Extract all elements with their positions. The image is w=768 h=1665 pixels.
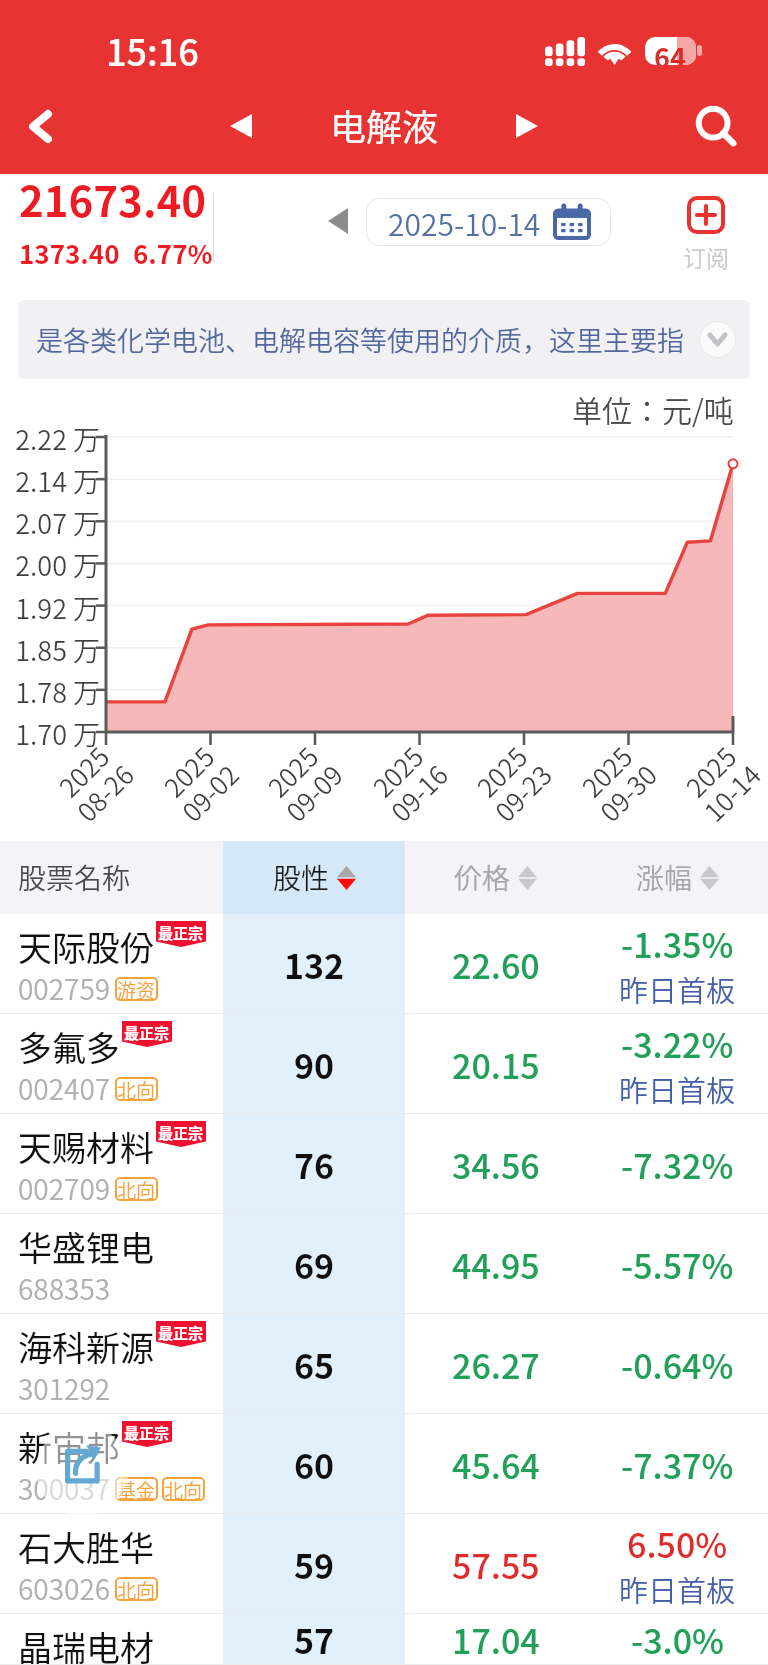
- staticText: 北向: [117, 1076, 156, 1100]
- staticText: -5.57%: [621, 1240, 734, 1289]
- staticText: 300037: [18, 1468, 111, 1509]
- staticText: 新宙邦: [18, 1422, 120, 1471]
- staticText: 游资: [117, 976, 156, 1000]
- staticText: 2025-10-14: [388, 201, 541, 244]
- staticText: 股票名称: [18, 857, 131, 898]
- staticText: 最正宗: [158, 1322, 204, 1344]
- staticText: 64: [654, 37, 686, 65]
- button[interactable]: 石大胜华: [0, 1514, 768, 1614]
- staticText: 2025 09-23: [445, 715, 578, 848]
- button[interactable]: Expand description: [699, 321, 736, 358]
- staticText: 1.85 万: [6, 630, 100, 669]
- button[interactable]: 2025-10-14: [366, 198, 611, 246]
- button[interactable]: 天际股份: [0, 914, 768, 1014]
- button[interactable]: Back: [4, 78, 76, 174]
- staticText: 北向: [117, 1176, 156, 1200]
- staticText: 单位：元/吨: [572, 387, 734, 430]
- button[interactable]: 海科新源: [0, 1314, 768, 1414]
- staticText: 2025 09-02: [132, 715, 265, 848]
- staticText: 002407: [18, 1068, 111, 1109]
- staticText: 26.27: [452, 1340, 540, 1389]
- staticText: 20.15: [452, 1040, 540, 1089]
- staticText: 海科新源: [18, 1322, 154, 1371]
- staticText: 多氟多: [18, 1022, 120, 1071]
- staticText: 石大胜华: [18, 1522, 154, 1571]
- button[interactable]: 股票名称: [0, 841, 223, 914]
- staticText: 价格: [454, 857, 511, 898]
- staticText: -3.0%: [631, 1615, 724, 1664]
- staticText: 晶瑞电材: [18, 1622, 154, 1665]
- button[interactable]: Previous day: [314, 188, 362, 254]
- staticText: 天际股份: [18, 922, 154, 971]
- button[interactable]: 晶瑞电材: [0, 1614, 768, 1665]
- staticText: 22.60: [452, 940, 540, 989]
- staticText: 是各类化学电池、电解电容等使用的介质，这里主要指: [36, 320, 684, 359]
- staticText: 6.77%: [133, 234, 213, 272]
- staticText: 301292: [18, 1368, 111, 1409]
- staticText: -3.22%: [621, 1019, 734, 1068]
- staticText: 59: [294, 1540, 335, 1589]
- staticText: 17.04: [452, 1615, 540, 1664]
- staticText: 最正宗: [158, 922, 204, 944]
- staticText: -7.32%: [621, 1140, 734, 1189]
- staticText: 2.22 万: [6, 419, 100, 458]
- staticText: 昨日首板: [619, 1068, 736, 1110]
- staticText: 天赐材料: [18, 1122, 154, 1171]
- button[interactable]: 价格: [405, 841, 586, 914]
- staticText: 昨日首板: [619, 1568, 736, 1610]
- staticText: 45.64: [452, 1440, 540, 1489]
- staticText: 15:16: [106, 24, 199, 76]
- staticText: 6.50%: [627, 1519, 728, 1568]
- staticText: 34.56: [452, 1140, 540, 1189]
- button[interactable]: 涨幅: [586, 841, 768, 914]
- staticText: 44.95: [452, 1240, 540, 1289]
- staticText: 股性: [273, 857, 330, 898]
- staticText: 1.78 万: [6, 672, 100, 711]
- staticText: 21673.40: [19, 168, 207, 229]
- button[interactable]: 天赐材料: [0, 1114, 768, 1214]
- staticText: -1.35%: [621, 919, 734, 968]
- staticText: 60: [294, 1440, 335, 1489]
- staticText: 603026: [18, 1568, 111, 1609]
- staticText: 688353: [18, 1268, 111, 1309]
- staticText: 基金: [117, 1476, 156, 1500]
- staticText: 2025 09-16: [341, 715, 474, 848]
- staticText: 65: [294, 1340, 335, 1389]
- button[interactable]: Next sector: [496, 78, 558, 174]
- staticText: 最正宗: [158, 1122, 204, 1144]
- staticText: 132: [284, 940, 345, 989]
- staticText: 涨幅: [636, 857, 693, 898]
- staticText: 1.70 万: [6, 714, 100, 753]
- button[interactable]: Search: [683, 78, 749, 174]
- staticText: -0.64%: [621, 1340, 734, 1389]
- staticText: 76: [294, 1140, 335, 1189]
- staticText: 2025 08-26: [27, 715, 160, 848]
- button[interactable]: Previous sector: [210, 78, 272, 174]
- staticText: -7.37%: [621, 1440, 734, 1489]
- staticText: 1.92 万: [6, 588, 100, 627]
- staticText: 昨日首板: [619, 968, 736, 1010]
- button[interactable]: 华盛锂电: [0, 1214, 768, 1314]
- staticText: 2025 10-14: [654, 715, 768, 848]
- staticText: 2025 09-09: [236, 715, 369, 848]
- staticText: 北向: [117, 1576, 156, 1600]
- staticText: 1373.40: [19, 234, 120, 272]
- button[interactable]: 股性: [223, 841, 405, 914]
- staticText: 002709: [18, 1168, 111, 1209]
- button[interactable]: 新宙邦: [0, 1414, 768, 1514]
- staticText: 最正宗: [124, 1022, 170, 1044]
- staticText: 2.07 万: [6, 503, 100, 542]
- staticText: 订阅: [683, 240, 729, 273]
- staticText: 最正宗: [124, 1422, 170, 1444]
- staticText: 002759: [18, 968, 111, 1009]
- staticText: 90: [294, 1040, 335, 1089]
- staticText: 2025 09-30: [550, 715, 683, 848]
- button[interactable]: 订阅: [666, 196, 746, 273]
- button[interactable]: 是各类化学电池、电解电容等使用的介质，这里主要指: [18, 300, 750, 379]
- staticText: 华盛锂电: [18, 1222, 154, 1271]
- staticText: 57: [294, 1615, 335, 1664]
- button[interactable]: 多氟多: [0, 1014, 768, 1114]
- staticText: 2.00 万: [6, 545, 100, 584]
- staticText: 69: [294, 1240, 335, 1289]
- staticText: 北向: [164, 1476, 203, 1500]
